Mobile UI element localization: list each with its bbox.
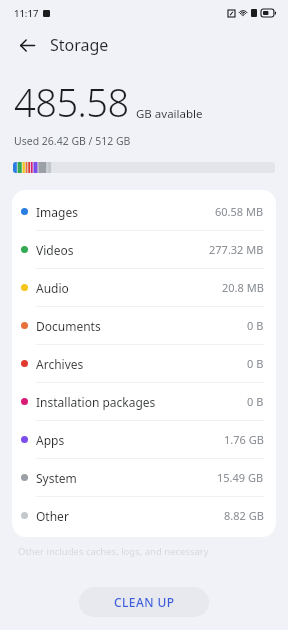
staticText: Other xyxy=(36,508,69,524)
staticText: 20.8 MB xyxy=(222,280,264,295)
staticText: Storage xyxy=(50,34,109,56)
button[interactable]: Documents xyxy=(12,307,276,344)
button[interactable]: Installation packages xyxy=(12,383,276,420)
staticText: 0 B xyxy=(247,394,264,409)
button[interactable]: System xyxy=(12,459,276,496)
button[interactable]: Images xyxy=(12,193,276,230)
button[interactable]: CLEAN UP xyxy=(79,587,209,617)
staticText: Documents xyxy=(36,318,101,334)
staticText: CLEAN UP xyxy=(114,594,175,610)
button[interactable]: Videos xyxy=(12,231,276,268)
staticText: 1.76 GB xyxy=(224,432,264,447)
staticText: 60.58 MB xyxy=(215,204,264,219)
staticText: 11:17 xyxy=(14,7,39,20)
staticText: Images xyxy=(36,204,78,220)
staticText: GB available xyxy=(136,106,203,122)
staticText: 485.58 xyxy=(14,76,129,128)
button[interactable]: Back xyxy=(14,32,40,58)
staticText: Apps xyxy=(36,432,65,448)
staticText: 0 B xyxy=(247,356,264,371)
staticText: Archives xyxy=(36,356,84,372)
button[interactable]: Archives xyxy=(12,345,276,382)
staticText: System xyxy=(36,470,77,486)
staticText: Audio xyxy=(36,280,69,296)
staticText: 15.49 GB xyxy=(217,470,264,485)
button[interactable]: Audio xyxy=(12,269,276,306)
staticText: 0 B xyxy=(247,318,264,333)
staticText: 277.32 MB xyxy=(209,242,264,257)
staticText: Installation packages xyxy=(36,394,156,410)
staticText: Other includes caches, logs, and necessa… xyxy=(18,545,209,558)
staticText: 8.82 GB xyxy=(224,508,264,523)
button[interactable]: Apps xyxy=(12,421,276,458)
staticText: Used 26.42 GB / 512 GB xyxy=(14,134,131,148)
staticText: Videos xyxy=(36,242,74,258)
button[interactable]: Other xyxy=(12,497,276,534)
